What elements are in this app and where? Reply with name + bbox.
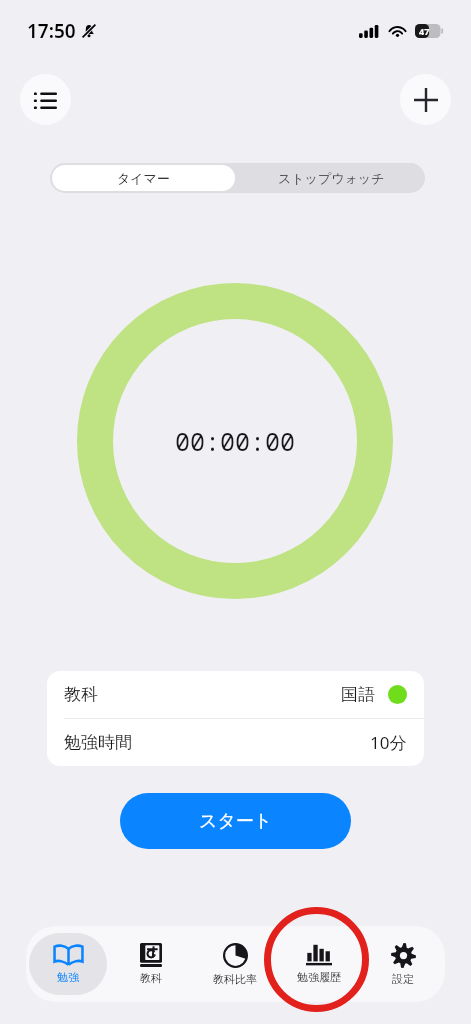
button[interactable]: 勉強時間 [47, 719, 424, 766]
staticText: 教科 [64, 684, 98, 705]
staticText: 00:00:00 [175, 424, 296, 458]
button[interactable]: 勉強 [29, 933, 107, 995]
staticText: 17:50 [27, 18, 76, 44]
staticText: 47 [419, 25, 430, 37]
staticText: 国語 [341, 684, 375, 705]
staticText: タイマー [117, 170, 170, 186]
staticText: ストップウォッチ [278, 170, 385, 186]
button[interactable]: Menu [20, 74, 71, 125]
button[interactable]: 教科 [47, 671, 424, 718]
button[interactable]: ストップウォッチ [237, 163, 425, 193]
staticText: 設定 [392, 972, 414, 986]
button[interactable]: 教科比率 [196, 933, 274, 995]
button[interactable]: 設定 [364, 933, 442, 995]
staticText: 10分 [370, 731, 407, 754]
button[interactable]: タイマー [52, 165, 235, 191]
staticText: 勉強 [57, 970, 79, 984]
staticText: 教科比率 [213, 972, 257, 986]
button[interactable]: 勉強履歴 [280, 933, 358, 995]
button[interactable]: スタート [120, 793, 351, 849]
staticText: 勉強時間 [64, 732, 132, 753]
button[interactable]: Add [400, 74, 451, 125]
button[interactable]: 教科 [112, 933, 190, 995]
staticText: スタート [199, 810, 273, 833]
staticText: 勉強履歴 [297, 970, 341, 984]
staticText: 教科 [140, 971, 162, 985]
